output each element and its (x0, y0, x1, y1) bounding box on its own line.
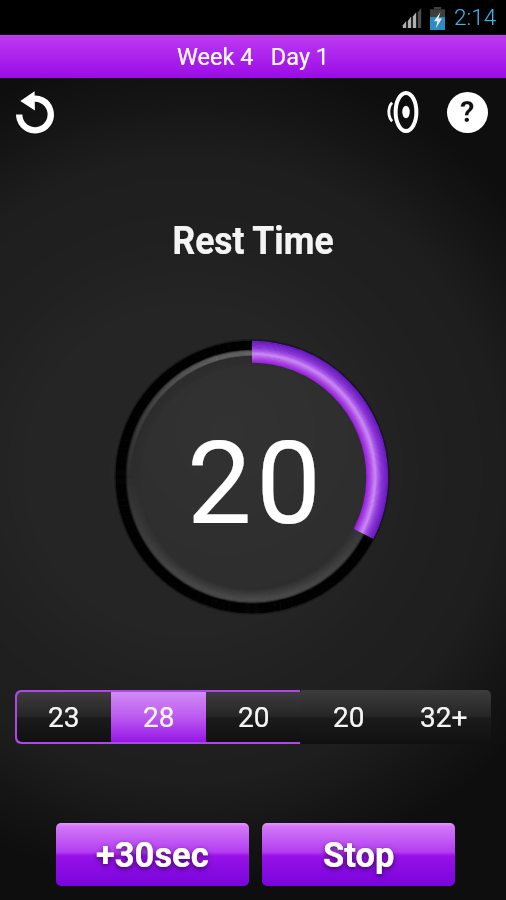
button[interactable]: Help (443, 88, 491, 136)
button[interactable]: Restart workout (11, 89, 59, 137)
staticText: Week 4 Day 1 (177, 43, 330, 71)
staticText: 20 (238, 701, 270, 734)
staticText: Stop (323, 835, 395, 875)
button[interactable]: Stop (262, 823, 455, 886)
staticText: 20 (187, 416, 326, 551)
button[interactable]: 28 (111, 692, 206, 742)
button[interactable]: Sound settings (382, 88, 430, 136)
staticText: 23 (48, 701, 80, 734)
staticText: 32+ (420, 701, 468, 734)
button[interactable]: 32+ (396, 690, 491, 744)
staticText: 20 (333, 701, 365, 734)
staticText: +30sec (96, 835, 209, 875)
button[interactable]: 20 (206, 692, 301, 742)
staticText: 2:14 (454, 4, 497, 30)
button[interactable]: 20 (301, 690, 396, 744)
staticText: ? (460, 95, 475, 129)
staticText: Rest Time (19, 218, 487, 263)
staticText: 28 (143, 701, 175, 734)
button[interactable]: 23 (17, 692, 111, 742)
button[interactable]: +30sec (56, 823, 249, 886)
